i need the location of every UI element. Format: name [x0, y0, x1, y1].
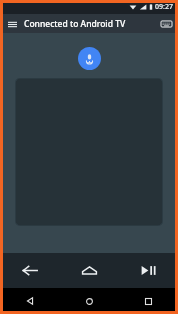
button[interactable]: Home [60, 253, 119, 288]
staticText: Connected to Android TV [24, 18, 158, 30]
button[interactable]: Back [0, 253, 60, 288]
button[interactable]: Recent apps [119, 288, 178, 314]
button[interactable]: Play or pause [119, 253, 178, 288]
button[interactable]: Home [60, 288, 119, 314]
button[interactable]: Open navigation drawer [4, 16, 20, 32]
button[interactable]: Keyboard [158, 16, 174, 32]
button[interactable]: Back [0, 288, 60, 314]
button[interactable]: Voice search [78, 47, 101, 70]
staticText: 09:27 [155, 2, 173, 12]
